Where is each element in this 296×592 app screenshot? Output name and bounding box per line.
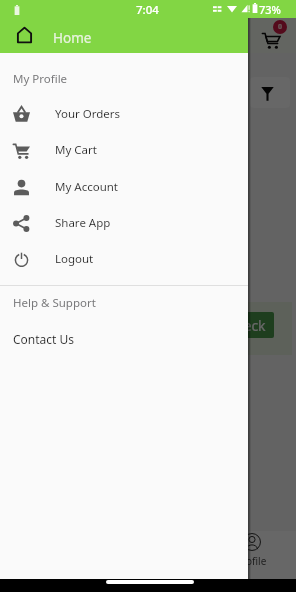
button[interactable]: Contact Us — [0, 327, 248, 351]
staticText: Contact Us — [13, 331, 75, 347]
staticText: 0 — [278, 22, 283, 32]
staticText: 73% — [259, 2, 281, 17]
button[interactable] — [0, 18, 248, 53]
staticText: Profile — [236, 554, 267, 568]
staticText: My Cart — [55, 142, 97, 158]
staticText: Your Orders — [55, 106, 121, 122]
button[interactable]: Cart — [262, 31, 280, 49]
staticText: 7:04 — [136, 2, 159, 18]
button[interactable]: Profile — [236, 533, 267, 568]
button[interactable]: Logout — [0, 241, 248, 277]
button[interactable]: My Account — [0, 169, 248, 205]
button[interactable]: Check — [218, 312, 274, 338]
staticText: Help & Support — [13, 295, 96, 311]
staticText: Home — [53, 29, 92, 47]
staticText: My Account — [55, 179, 118, 195]
button[interactable]: Filter — [250, 77, 290, 108]
staticText: My Profile — [13, 71, 68, 87]
button[interactable]: Your Orders — [0, 96, 248, 132]
staticText: Share App — [55, 215, 111, 231]
button[interactable]: Share App — [0, 205, 248, 241]
button[interactable]: My Cart — [0, 132, 248, 168]
staticText: Check — [226, 316, 266, 335]
staticText: Logout — [55, 251, 94, 267]
